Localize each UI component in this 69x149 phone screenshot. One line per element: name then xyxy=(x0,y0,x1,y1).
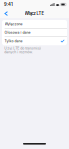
staticText: Włącz LTE xyxy=(24,11,44,16)
staticText: Głosowa i dane xyxy=(5,30,31,34)
staticText: 9:41 xyxy=(4,2,13,7)
button[interactable]: Wstecz xyxy=(0,9,12,18)
staticText: Wyłączone xyxy=(5,22,23,26)
button[interactable]: Tylko dane xyxy=(2,37,67,45)
staticText: Użyj LTE do transmisji xyxy=(4,46,41,50)
button[interactable]: Głosowa i dane xyxy=(2,28,67,37)
button[interactable]: Wyłączone xyxy=(2,20,67,28)
staticText: Tylko dane xyxy=(5,39,23,43)
staticText: danych i rozmów. xyxy=(4,50,33,54)
